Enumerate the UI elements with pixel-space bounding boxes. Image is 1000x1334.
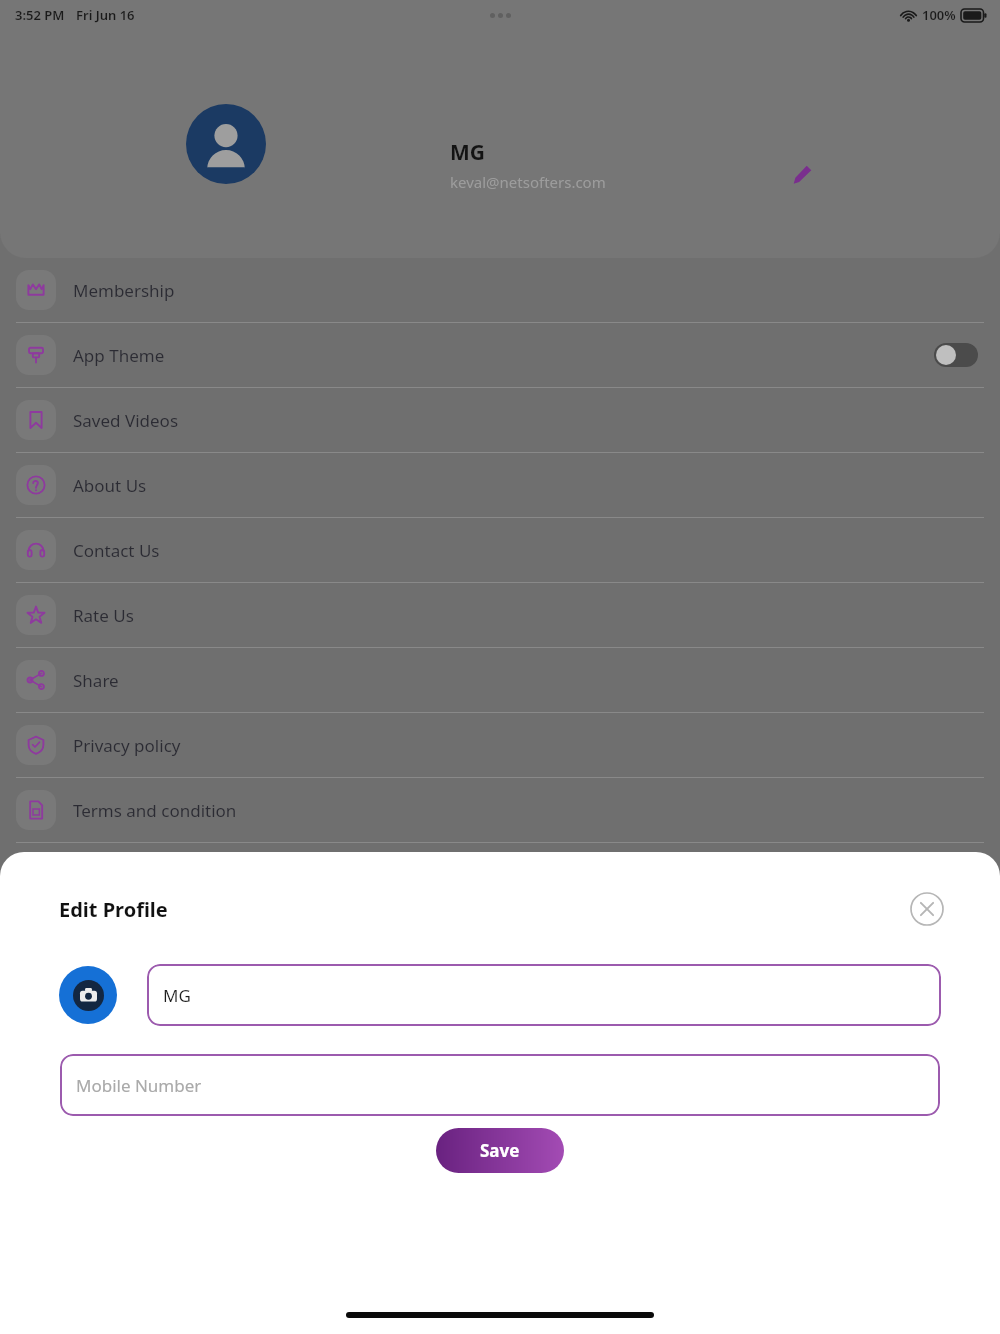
staticText: keval@netsofters.com [450,172,606,192]
staticText: Terms and condition [73,799,237,822]
staticText: Save [480,1139,520,1162]
staticText: MG [450,138,486,167]
staticText: 100% [922,6,956,24]
button[interactable]: Privacy policy [0,713,1000,777]
staticText: MG [163,984,191,1007]
staticText: Rate Us [73,604,134,627]
button[interactable]: Close [910,892,944,926]
button[interactable]: About Us [0,453,1000,517]
staticText: 3:52 PM [15,6,65,24]
staticText: About Us [73,474,147,497]
staticText: Mobile Number [76,1074,202,1097]
button[interactable]: Edit profile [780,152,824,196]
staticText: Contact Us [73,539,160,562]
staticText: Fri Jun 16 [76,6,135,24]
button[interactable]: Contact Us [0,518,1000,582]
staticText: Privacy policy [73,734,181,757]
button[interactable]: Change photo [59,966,117,1024]
staticText: Share [73,669,119,692]
staticText: Saved Videos [73,409,179,432]
button[interactable]: Membership [0,258,1000,322]
staticText: Membership [73,279,175,302]
button[interactable]: Mobile Number [60,1054,940,1116]
button[interactable]: App theme toggle [934,343,978,367]
button[interactable]: Saved Videos [0,388,1000,452]
button[interactable]: MG [147,964,941,1026]
button[interactable]: App Theme [0,323,1000,387]
button[interactable]: Share [0,648,1000,712]
staticText: Edit Profile [59,896,168,923]
button[interactable]: Rate Us [0,583,1000,647]
button[interactable]: Terms and condition [0,778,1000,842]
staticText: App Theme [73,344,165,367]
button[interactable]: Save [436,1128,564,1173]
